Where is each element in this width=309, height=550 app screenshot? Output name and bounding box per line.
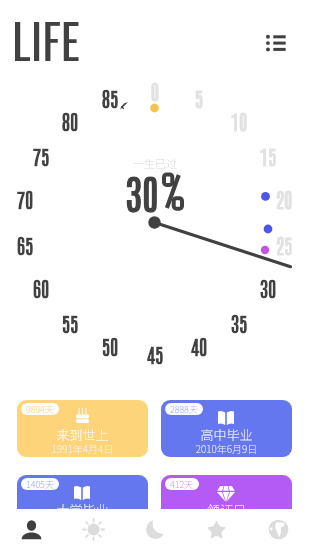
button[interactable]: 412天 <box>161 475 292 532</box>
button[interactable]: Profile <box>7 509 55 550</box>
button[interactable]: 9894天 <box>17 400 148 457</box>
staticText: 50 <box>96 333 124 359</box>
button[interactable]: 2888天 <box>161 400 292 457</box>
staticText: 15 <box>254 143 282 169</box>
button[interactable]: Night <box>131 509 179 550</box>
staticText: 2010年6月9日 <box>161 441 292 455</box>
staticText: 来到世上 <box>17 425 148 444</box>
staticText: 5 <box>185 85 213 111</box>
button[interactable]: Daytime <box>69 509 117 550</box>
staticText: 35 <box>225 310 253 336</box>
staticText: 40 <box>185 333 213 359</box>
staticText: 一生已过 <box>115 155 195 171</box>
staticText: 70 <box>11 186 39 212</box>
staticText: 75 <box>27 143 55 169</box>
staticText: 9894天 <box>26 403 54 415</box>
staticText: 55 <box>56 310 84 336</box>
staticText: 80 <box>56 108 84 134</box>
staticText: 10 <box>225 108 253 134</box>
staticText: 2020年1月1日 <box>161 516 292 530</box>
staticText: 2888天 <box>170 403 198 415</box>
staticText: 大学毕业 <box>17 500 148 519</box>
staticText: 30 <box>117 166 167 218</box>
button[interactable]: Favorites <box>192 509 240 550</box>
staticText: 65 <box>11 232 39 258</box>
staticText: 412天 <box>170 478 194 490</box>
button[interactable]: 1405天 <box>17 475 148 532</box>
staticText: LIFE <box>12 5 80 75</box>
staticText: 85 <box>96 85 124 111</box>
button[interactable]: World <box>254 509 302 550</box>
staticText: 2014年6月9日 <box>17 516 148 530</box>
staticText: 0 <box>141 78 169 104</box>
staticText: 1405天 <box>26 478 54 490</box>
staticText: 25 <box>270 232 298 258</box>
staticText: 1991年4月4日 <box>17 441 148 455</box>
staticText: 60 <box>27 275 55 301</box>
staticText: 领证日 <box>161 500 292 519</box>
button[interactable]: Edit life expectancy <box>114 96 134 116</box>
button[interactable]: List view <box>260 27 292 59</box>
staticText: 45 <box>141 341 169 367</box>
staticText: 20 <box>270 186 298 212</box>
staticText: 高中毕业 <box>161 425 292 444</box>
staticText: 30 <box>254 275 282 301</box>
